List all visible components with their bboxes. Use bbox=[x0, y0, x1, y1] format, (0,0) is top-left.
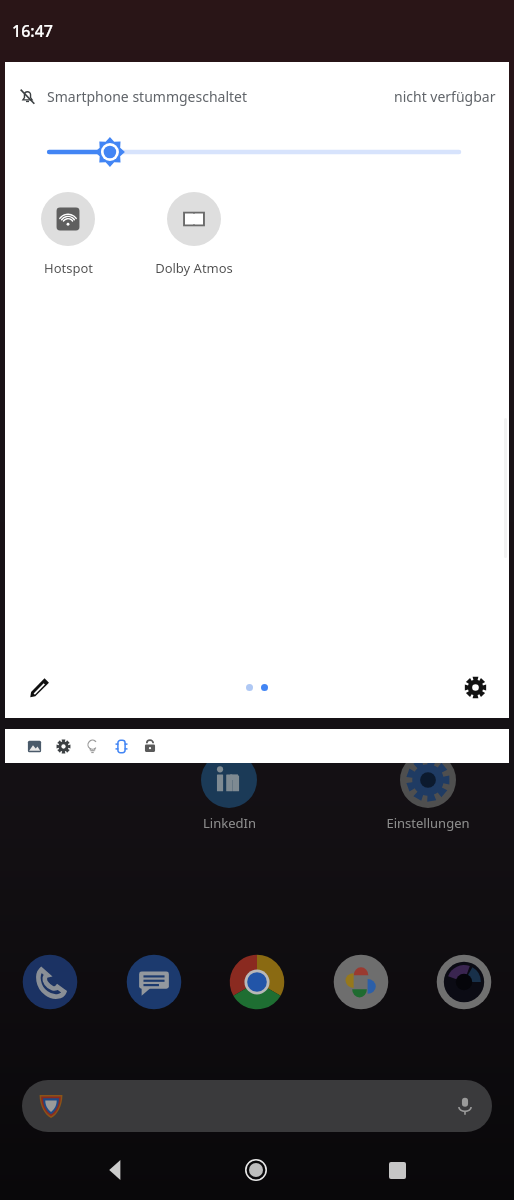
button[interactable]: Chrome bbox=[225, 950, 289, 1014]
button[interactable]: Photos bbox=[329, 950, 393, 1014]
staticText: Einstellungen bbox=[386, 814, 470, 832]
button[interactable]: Home bbox=[232, 1146, 280, 1194]
button[interactable]: Back bbox=[92, 1146, 140, 1194]
staticText: Hotspot bbox=[44, 259, 93, 277]
button[interactable]: Search bbox=[22, 1080, 492, 1132]
button[interactable]: LinkedIn bbox=[183, 752, 275, 832]
button[interactable]: Messages bbox=[122, 950, 186, 1014]
staticText: Dolby Atmos bbox=[155, 259, 233, 277]
staticText: 16:47 bbox=[12, 20, 53, 42]
button[interactable]: Dolby Atmos bbox=[131, 188, 257, 281]
button[interactable]: Hotspot bbox=[5, 188, 131, 281]
button[interactable]: Phone bbox=[18, 950, 82, 1014]
button[interactable]: Camera bbox=[432, 950, 496, 1014]
staticText: nicht verfügbar bbox=[394, 87, 496, 106]
button[interactable]: Smartphone stummgeschaltet bbox=[5, 76, 509, 116]
button[interactable]: Settings bbox=[455, 667, 495, 707]
button[interactable]: Edit tiles bbox=[19, 667, 59, 707]
button[interactable]: Recents bbox=[373, 1146, 421, 1194]
staticText: LinkedIn bbox=[203, 814, 256, 832]
staticText: Smartphone stummgeschaltet bbox=[47, 87, 248, 106]
button[interactable]: Brightness bbox=[5, 136, 509, 168]
button[interactable]: Einstellungen bbox=[382, 752, 474, 832]
button[interactable] bbox=[5, 729, 509, 763]
